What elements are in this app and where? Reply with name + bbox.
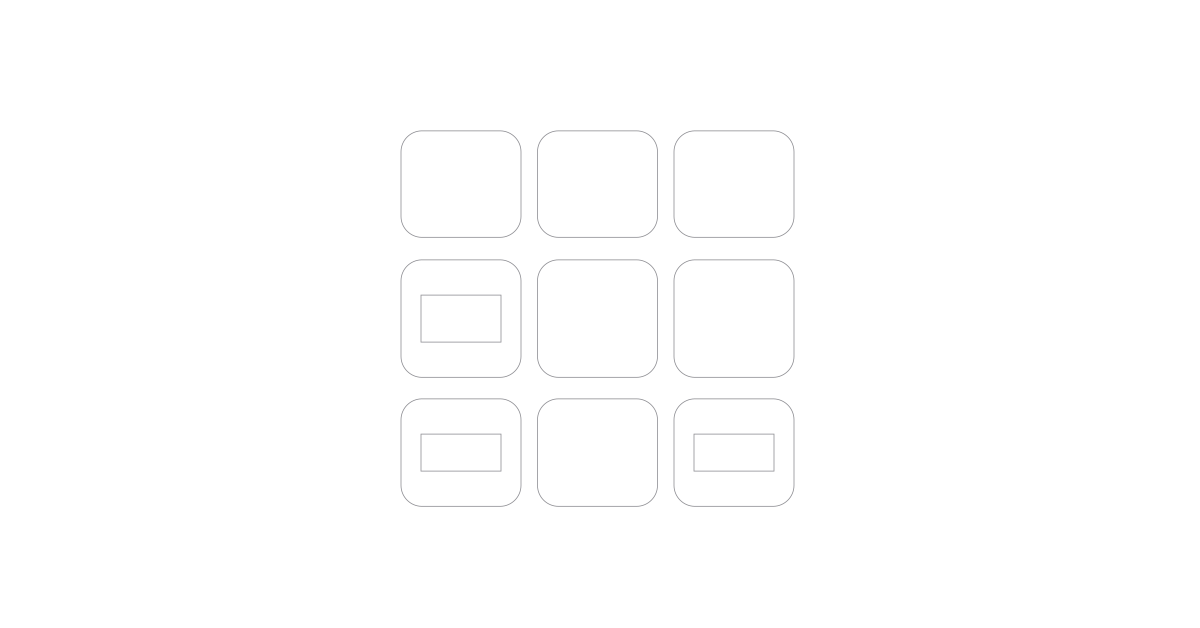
button[interactable]: Grid tile bbox=[401, 260, 521, 377]
button[interactable]: Grid tile bbox=[537, 399, 657, 506]
button[interactable]: Grid tile bbox=[537, 131, 657, 237]
button[interactable]: Grid tile bbox=[537, 260, 657, 377]
button[interactable]: Grid tile bbox=[674, 131, 794, 237]
button[interactable]: Grid tile bbox=[674, 260, 794, 377]
button[interactable]: Grid tile bbox=[401, 399, 521, 506]
button[interactable]: Grid tile bbox=[674, 399, 794, 506]
button[interactable]: Grid tile bbox=[401, 131, 521, 237]
